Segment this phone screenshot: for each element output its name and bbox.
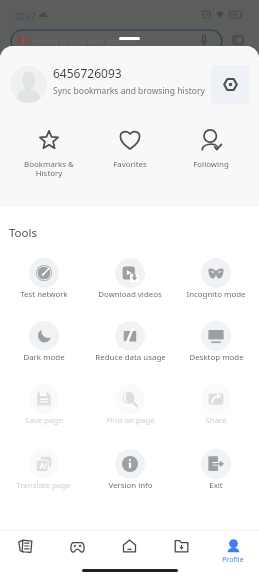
- staticText: Save page: [25, 415, 63, 426]
- button[interactable]: Translate page: [0, 449, 87, 491]
- button[interactable]: Test network: [0, 258, 87, 300]
- button[interactable]: Dark mode: [0, 321, 87, 363]
- staticText: Dark mode: [23, 352, 65, 363]
- staticText: Download videos: [98, 289, 162, 300]
- staticText: Test network: [20, 289, 68, 300]
- staticText: Bookmarks & History: [24, 159, 74, 178]
- button[interactable]: Home: [103, 539, 155, 553]
- staticText: Desktop mode: [189, 352, 244, 363]
- button[interactable]: Favorites: [89, 130, 170, 170]
- staticText: Exit: [209, 480, 223, 491]
- button[interactable]: Downloads: [155, 539, 207, 553]
- button[interactable]: Bookmarks & History: [8, 130, 89, 178]
- button[interactable]: Version info: [87, 449, 173, 491]
- staticText: Following: [193, 159, 229, 170]
- button[interactable]: Desktop mode: [173, 321, 259, 363]
- staticText: Sync bookmarks and browsing history: [53, 85, 205, 97]
- button[interactable]: Following: [170, 130, 251, 170]
- staticText: Translate page: [16, 480, 71, 491]
- button[interactable]: Download videos: [87, 258, 173, 300]
- button[interactable]: Settings: [211, 65, 249, 104]
- button[interactable]: Save page: [0, 384, 87, 426]
- staticText: Version info: [108, 480, 153, 491]
- button[interactable]: Profile: [207, 539, 259, 564]
- staticText: Tools: [9, 225, 37, 241]
- button[interactable]: Exit: [173, 449, 259, 491]
- staticText: Find on page: [106, 415, 155, 426]
- staticText: Reduce data usage: [95, 352, 166, 363]
- staticText: Search or type web address: [32, 36, 136, 47]
- button[interactable]: Find on page: [87, 384, 173, 426]
- staticText: 6456726093: [53, 65, 122, 81]
- staticText: Incognito mode: [186, 289, 246, 300]
- staticText: Favorites: [113, 159, 147, 170]
- staticText: Share: [205, 415, 227, 426]
- button[interactable]: Share: [173, 384, 259, 426]
- staticText: 20:37: [15, 11, 36, 22]
- button[interactable]: Incognito mode: [173, 258, 259, 300]
- staticText: Profile: [222, 554, 244, 564]
- button[interactable]: Games: [51, 539, 103, 553]
- button[interactable]: Reduce data usage: [87, 321, 173, 363]
- button[interactable]: News: [0, 539, 51, 553]
